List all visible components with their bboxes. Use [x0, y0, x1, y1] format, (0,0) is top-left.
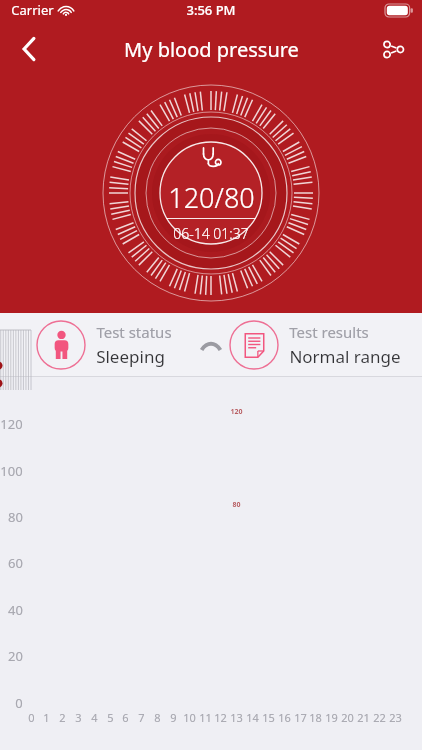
staticText: My blood pressure — [124, 36, 299, 63]
staticText: 20 — [8, 647, 23, 665]
staticText: 60 — [8, 554, 23, 572]
staticText: 11 — [199, 710, 212, 725]
staticText: 2 — [59, 710, 66, 725]
button[interactable]: Share — [370, 26, 416, 72]
button[interactable]: Test results — [223, 313, 422, 377]
staticText: 13 — [230, 710, 243, 725]
staticText: 20 — [341, 710, 354, 725]
staticText: 19 — [325, 710, 338, 725]
staticText: 80 — [232, 500, 241, 510]
staticText: 16 — [278, 710, 291, 725]
staticText: 9 — [170, 710, 177, 725]
staticText: 23 — [389, 710, 402, 725]
staticText: 15 — [262, 710, 275, 725]
staticText: 120/80 — [168, 179, 255, 216]
staticText: 80 — [8, 508, 23, 526]
button[interactable]: Back — [6, 26, 52, 72]
staticText: 22 — [373, 710, 386, 725]
staticText: Carrier — [11, 1, 54, 19]
button[interactable]: Test status — [0, 313, 199, 377]
staticText: Normal range — [289, 345, 401, 368]
staticText: 14 — [246, 710, 259, 725]
staticText: 0 — [28, 710, 35, 725]
staticText: 18 — [309, 710, 322, 725]
staticText: 5 — [107, 710, 114, 725]
staticText: 6 — [122, 710, 129, 725]
staticText: 1 — [43, 710, 50, 725]
staticText: 10 — [183, 710, 196, 725]
staticText: 120 — [0, 415, 23, 433]
staticText: 120 — [230, 407, 243, 417]
staticText: 7 — [138, 710, 145, 725]
staticText: Test results — [289, 322, 369, 342]
staticText: 17 — [294, 710, 307, 725]
staticText: 8 — [154, 710, 161, 725]
staticText: 40 — [8, 601, 23, 619]
staticText: 06-14 01:37 — [173, 224, 249, 243]
staticText: 4 — [91, 710, 98, 725]
staticText: Test status — [96, 322, 172, 342]
staticText: 3:56 PM — [186, 1, 236, 19]
staticText: 100 — [0, 462, 23, 480]
staticText: Sleeping — [96, 345, 165, 368]
staticText: 21 — [357, 710, 370, 725]
staticText: 3 — [75, 710, 82, 725]
staticText: 12 — [214, 710, 227, 725]
staticText: 0 — [15, 694, 23, 712]
